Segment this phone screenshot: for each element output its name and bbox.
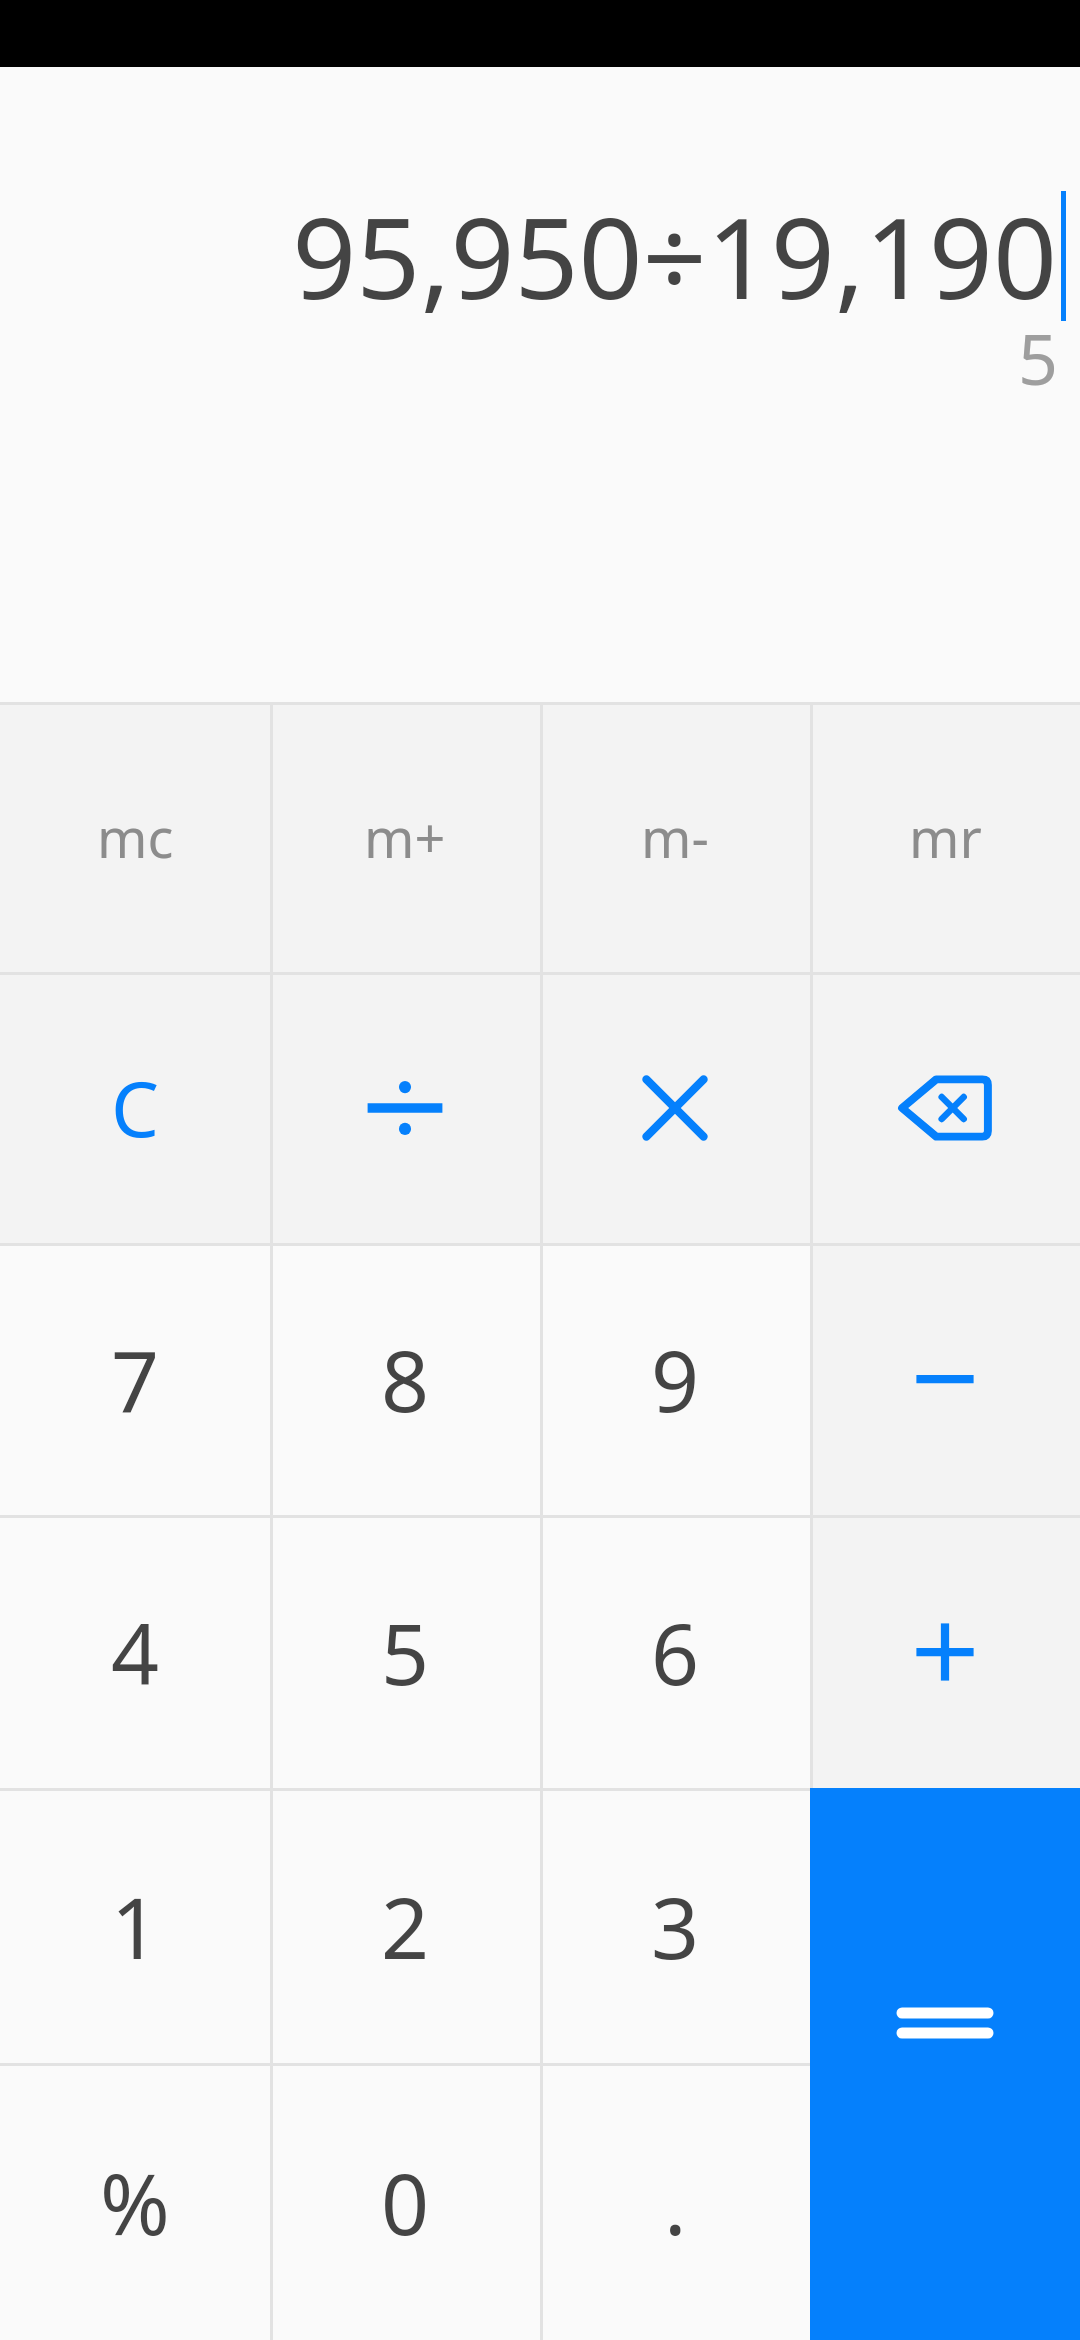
button[interactable]: 4: [0, 1515, 270, 1788]
staticText: 2: [381, 1869, 430, 1983]
button[interactable]: mr: [810, 702, 1080, 972]
button[interactable]: 3: [540, 1788, 810, 2063]
button[interactable]: 5: [270, 1515, 540, 1788]
button[interactable]: 6: [540, 1515, 810, 1788]
staticText: mc: [97, 800, 174, 874]
staticText: m-: [641, 800, 709, 874]
staticText: 4: [111, 1595, 160, 1709]
button[interactable]: C: [0, 972, 270, 1243]
button[interactable]: Divide: [270, 972, 540, 1243]
staticText: %: [100, 2145, 170, 2259]
button[interactable]: Equals: [810, 1788, 1080, 2340]
button[interactable]: 8: [270, 1243, 540, 1515]
staticText: 95,950÷19,190: [292, 179, 1057, 332]
button[interactable]: 7: [0, 1243, 270, 1515]
staticText: .: [664, 2145, 687, 2259]
button[interactable]: 2: [270, 1788, 540, 2063]
staticText: 3: [651, 1869, 700, 1983]
staticText: m+: [364, 800, 446, 874]
staticText: 6: [651, 1595, 700, 1709]
button[interactable]: mc: [0, 702, 270, 972]
button[interactable]: 9: [540, 1243, 810, 1515]
staticText: 5: [381, 1595, 430, 1709]
staticText: 8: [381, 1322, 430, 1436]
button[interactable]: 1: [0, 1788, 270, 2063]
staticText: 5: [1017, 310, 1058, 405]
button[interactable]: Minus: [810, 1243, 1080, 1515]
button[interactable]: 0: [270, 2063, 540, 2340]
button[interactable]: m-: [540, 702, 810, 972]
button[interactable]: Plus: [810, 1515, 1080, 1788]
button[interactable]: Backspace: [810, 972, 1080, 1243]
button[interactable]: .: [540, 2063, 810, 2340]
staticText: 0: [381, 2145, 430, 2259]
staticText: mr: [909, 800, 982, 874]
staticText: 1: [111, 1869, 160, 1983]
button[interactable]: m+: [270, 702, 540, 972]
staticText: 7: [111, 1322, 160, 1436]
button[interactable]: %: [0, 2063, 270, 2340]
staticText: C: [111, 1056, 160, 1160]
staticText: 9: [651, 1322, 700, 1436]
button[interactable]: Multiply: [540, 972, 810, 1243]
